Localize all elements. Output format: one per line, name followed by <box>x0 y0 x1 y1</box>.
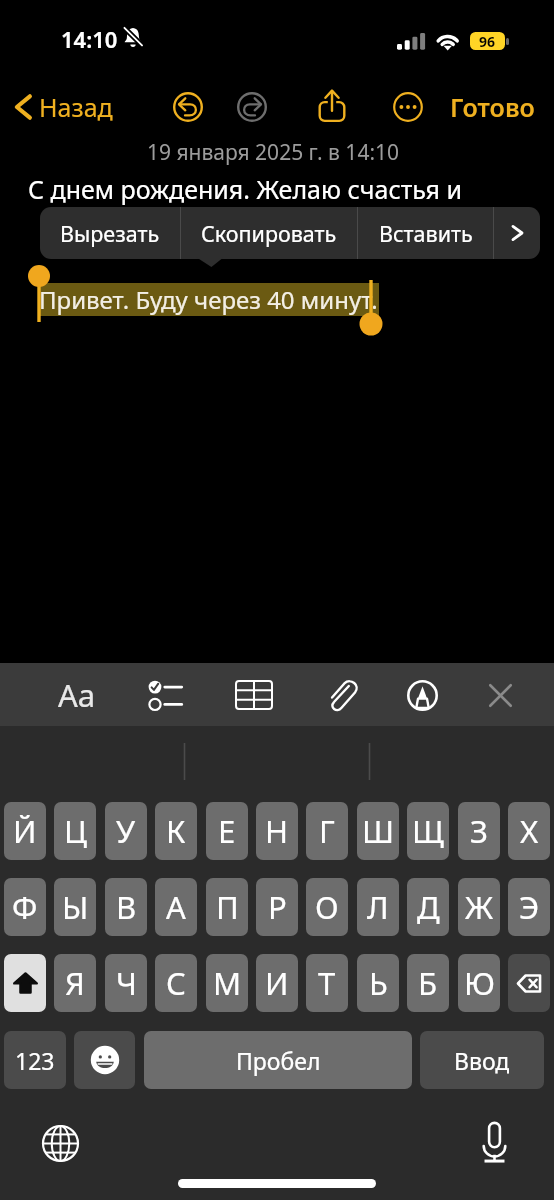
button[interactable]: Ввод <box>420 1031 544 1089</box>
button[interactable]: Р <box>256 878 298 936</box>
staticText: 14:10 <box>61 24 118 54</box>
staticText: Вставить <box>379 219 473 248</box>
staticText: З <box>470 810 488 852</box>
button[interactable]: Checklist <box>140 673 192 717</box>
button[interactable]: Shift <box>4 954 46 1012</box>
button[interactable]: More options <box>388 87 428 127</box>
staticText: Скопировать <box>201 219 337 248</box>
button[interactable]: П <box>206 878 248 936</box>
staticText: Назад <box>39 90 113 124</box>
staticText: Я <box>65 962 85 1004</box>
staticText: Г <box>319 810 335 852</box>
button[interactable]: Д <box>407 878 449 936</box>
staticText: Ввод <box>454 1045 510 1076</box>
staticText: Л <box>367 886 389 928</box>
staticText: Й <box>13 810 37 852</box>
button[interactable]: Change keyboard language <box>38 1121 83 1166</box>
staticText: Т <box>318 962 336 1004</box>
staticText: Ч <box>116 962 137 1004</box>
button[interactable]: 123 <box>4 1031 66 1089</box>
button[interactable]: К <box>155 802 197 860</box>
button[interactable]: Назад <box>14 88 113 126</box>
staticText: 123 <box>15 1045 55 1076</box>
staticText: С днем рождения. Желаю счастья и <box>28 172 462 206</box>
staticText: Aa <box>58 674 96 716</box>
button[interactable]: У <box>105 802 147 860</box>
button[interactable]: А <box>155 878 197 936</box>
button[interactable]: Markup <box>392 673 452 717</box>
button[interactable]: Share <box>311 84 352 125</box>
button[interactable]: Вырезать <box>40 207 180 259</box>
button[interactable]: Emoji <box>74 1031 135 1089</box>
staticText: Готово <box>450 90 535 124</box>
button[interactable]: Ы <box>54 878 96 936</box>
staticText: Ф <box>12 886 38 928</box>
staticText: Ы <box>62 886 89 928</box>
staticText: У <box>116 810 136 852</box>
button[interactable]: Скопировать <box>181 207 357 259</box>
button[interactable]: Я <box>54 954 96 1012</box>
button[interactable]: Ж <box>458 878 500 936</box>
staticText: Ц <box>64 810 87 852</box>
button[interactable]: Backspace <box>508 954 550 1012</box>
button[interactable]: Т <box>306 954 348 1012</box>
button[interactable]: И <box>256 954 298 1012</box>
button[interactable]: Вставить <box>358 207 493 259</box>
staticText: И <box>265 962 289 1004</box>
button[interactable]: Ш <box>357 802 399 860</box>
staticText: Привет. Буду через 40 минут. <box>39 283 378 316</box>
staticText: 96 <box>479 32 496 50</box>
button[interactable]: Undo <box>168 87 208 127</box>
staticText: Пробел <box>236 1045 321 1076</box>
staticText: Ь <box>369 962 388 1004</box>
button[interactable]: З <box>458 802 500 860</box>
staticText: Ж <box>465 886 494 928</box>
button[interactable]: Ц <box>54 802 96 860</box>
button[interactable]: С <box>155 954 197 1012</box>
staticText: А <box>166 886 186 928</box>
button[interactable]: М <box>206 954 248 1012</box>
button[interactable]: Dictate <box>471 1120 517 1166</box>
staticText: В <box>116 886 137 928</box>
button[interactable]: Redo <box>232 87 272 127</box>
staticText: С <box>166 962 186 1004</box>
button[interactable]: Г <box>306 802 348 860</box>
staticText: К <box>166 810 186 852</box>
button[interactable]: Н <box>256 802 298 860</box>
button[interactable]: Aa <box>47 673 107 717</box>
button[interactable]: Готово <box>450 88 535 126</box>
button[interactable]: Е <box>206 802 248 860</box>
staticText: Н <box>265 810 289 852</box>
staticText: Б <box>418 962 438 1004</box>
button[interactable]: Щ <box>407 802 449 860</box>
button[interactable]: Ч <box>105 954 147 1012</box>
staticText: Д <box>417 886 440 928</box>
button[interactable]: Л <box>357 878 399 936</box>
button[interactable]: Ф <box>4 878 46 936</box>
button[interactable]: Ь <box>357 954 399 1012</box>
button[interactable]: Й <box>4 802 46 860</box>
button[interactable]: Table <box>224 673 284 717</box>
staticText: Щ <box>412 810 444 852</box>
button[interactable]: Close keyboard <box>472 675 528 715</box>
button[interactable]: Пробел <box>144 1031 412 1089</box>
staticText: Вырезать <box>60 219 160 248</box>
staticText: Э <box>519 886 540 928</box>
staticText: Ю <box>464 962 495 1004</box>
button[interactable]: Б <box>407 954 449 1012</box>
button[interactable]: Ю <box>458 954 500 1012</box>
staticText: Р <box>268 886 287 928</box>
button[interactable]: О <box>306 878 348 936</box>
staticText: М <box>213 962 242 1004</box>
staticText: П <box>216 886 239 928</box>
button[interactable]: В <box>105 878 147 936</box>
button[interactable]: More <box>494 207 540 259</box>
staticText: Х <box>520 810 539 852</box>
button[interactable]: Attach <box>311 675 371 715</box>
button[interactable]: Х <box>508 802 550 860</box>
button[interactable]: Э <box>508 878 550 936</box>
staticText: О <box>315 886 339 928</box>
staticText: Ш <box>362 810 395 852</box>
staticText: Е <box>218 810 236 852</box>
staticText: 19 января 2025 г. в 14:10 <box>0 138 550 167</box>
